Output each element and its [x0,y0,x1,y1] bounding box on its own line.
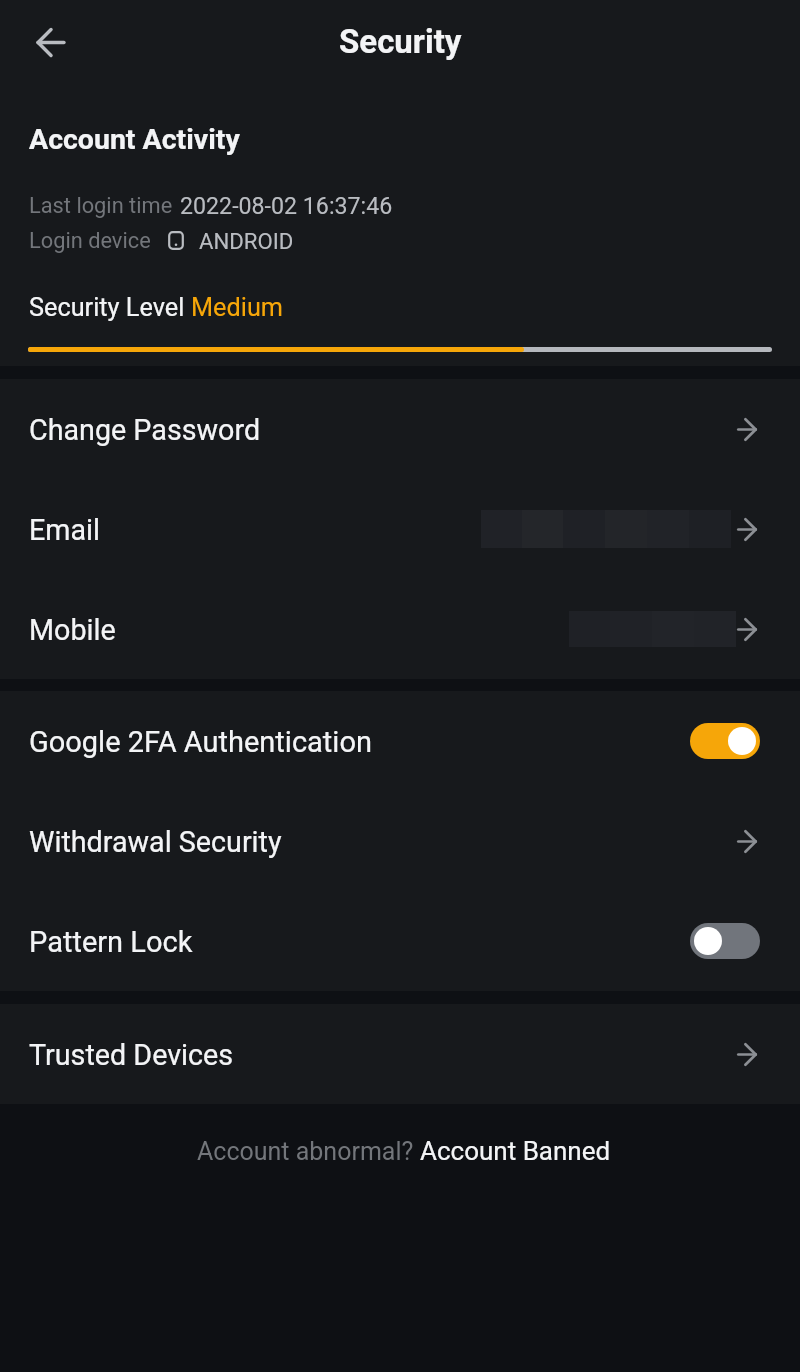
staticText: Pattern Lock [29,925,193,959]
button[interactable]: Mobile [0,579,800,679]
button[interactable]: Google 2FA Authentication [0,691,800,791]
button[interactable]: Back [22,14,78,70]
staticText: Trusted Devices [29,1038,234,1072]
staticText: Change Password [29,413,261,447]
staticText: 2022-08-02 16:37:46 [180,192,393,219]
staticText: Account abnormal? [197,1137,414,1166]
button[interactable]: Google 2FA Authentication, on [690,723,760,759]
staticText: Withdrawal Security [29,825,282,859]
staticText: Mobile [29,613,116,647]
button[interactable]: Change Password [0,379,800,479]
staticText: Security Level [29,293,185,323]
button[interactable]: Account Banned [420,1136,611,1166]
staticText: Login device [29,228,151,254]
staticText: Last login time [29,193,173,219]
button[interactable]: Email [0,479,800,579]
button[interactable]: Trusted Devices [0,1004,800,1104]
staticText: Medium [191,293,284,323]
button[interactable]: Pattern Lock [0,891,800,991]
staticText: Account Banned [420,1136,611,1166]
button[interactable]: Withdrawal Security [0,791,800,891]
staticText: Email [29,513,101,547]
staticText: ANDROID [199,228,294,254]
staticText: Google 2FA Authentication [29,725,372,759]
staticText: Account Activity [29,123,240,156]
button[interactable]: Pattern Lock, off [690,923,760,959]
staticText: Security [339,22,462,61]
